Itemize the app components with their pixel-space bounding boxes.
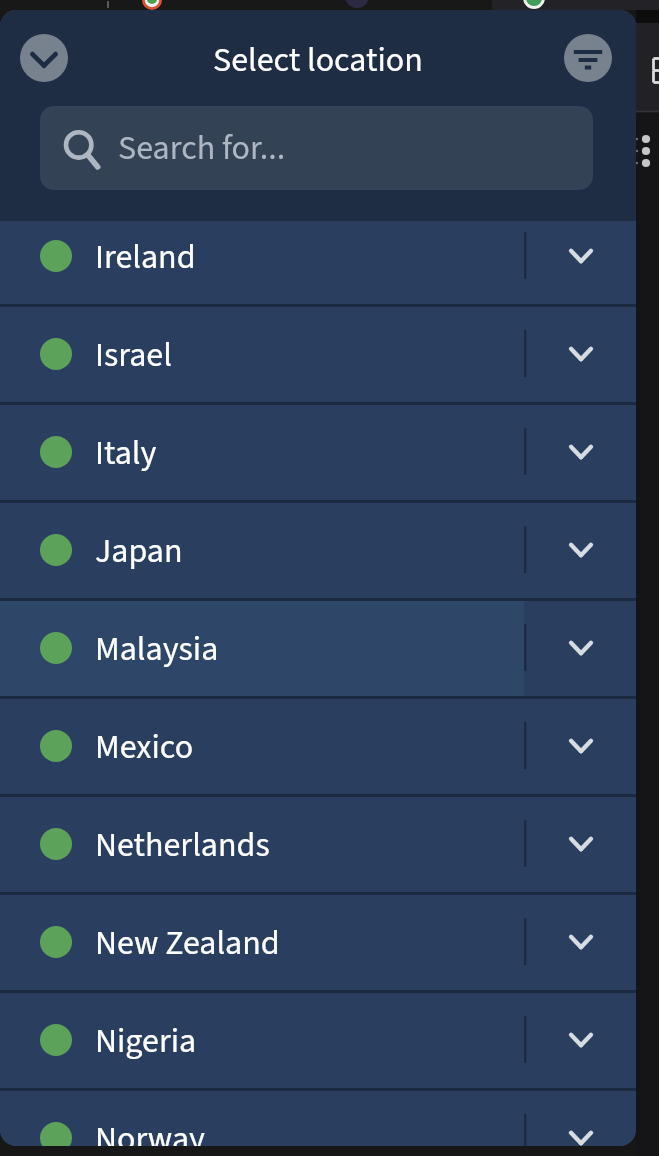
button[interactable]: New Zealand	[0, 895, 524, 990]
button[interactable]: Japan	[0, 503, 524, 598]
staticText: Israel	[95, 331, 172, 379]
button[interactable]: Mexico	[0, 699, 524, 794]
button[interactable]: Norway	[0, 1091, 524, 1146]
staticText: Ireland	[95, 233, 196, 281]
button[interactable]: Expand Netherlands	[524, 797, 636, 892]
button[interactable]: Expand Israel	[524, 307, 636, 402]
button[interactable]: Filter	[564, 34, 612, 82]
button[interactable]: Nigeria	[0, 993, 524, 1088]
button[interactable]: Expand Ireland	[524, 221, 636, 304]
staticText: Norway	[95, 1115, 205, 1146]
button[interactable]: Italy	[0, 405, 524, 500]
staticText: Netherlands	[95, 821, 270, 869]
staticText: Select location	[213, 36, 423, 84]
button[interactable]: Search for...	[40, 106, 593, 190]
staticText: Japan	[95, 527, 183, 575]
button[interactable]: Netherlands	[0, 797, 524, 892]
button[interactable]: Israel	[0, 307, 524, 402]
button[interactable]: Ireland	[0, 221, 524, 304]
button[interactable]: Expand Mexico	[524, 699, 636, 794]
staticText: Nigeria	[95, 1017, 197, 1065]
staticText: Malaysia	[95, 625, 219, 673]
staticText: Italy	[95, 429, 157, 477]
button[interactable]: Expand Norway	[524, 1091, 636, 1146]
button[interactable]: Expand Malaysia	[524, 601, 636, 696]
button[interactable]: Expand Italy	[524, 405, 636, 500]
button[interactable]: Expand Japan	[524, 503, 636, 598]
staticText: Search for...	[118, 124, 286, 172]
button[interactable]: Expand New Zealand	[524, 895, 636, 990]
button[interactable]: Expand Nigeria	[524, 993, 636, 1088]
staticText: New Zealand	[95, 919, 280, 967]
button[interactable]: Malaysia	[0, 601, 524, 696]
button[interactable]: Collapse	[20, 34, 68, 82]
staticText: Mexico	[95, 723, 194, 771]
